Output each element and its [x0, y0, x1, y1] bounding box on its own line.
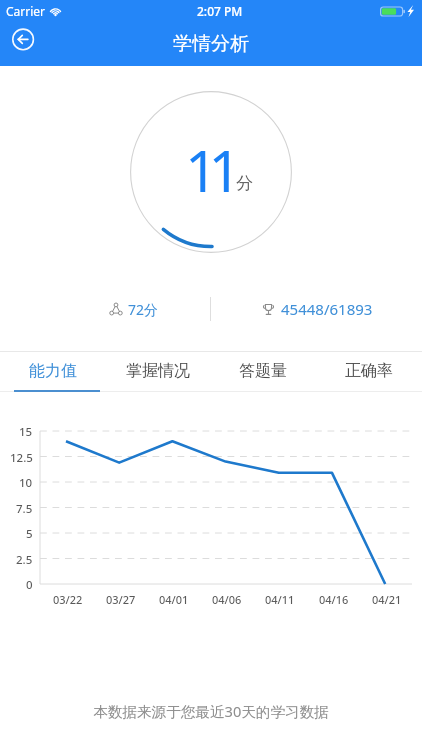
staticText: 正确率 [345, 361, 393, 381]
staticText: 04/06 [212, 592, 242, 607]
staticText: 12.5 [10, 450, 33, 466]
button[interactable]: 72分 [110, 295, 159, 323]
staticText: 5 [26, 526, 33, 542]
staticText: 学情分析 [173, 32, 249, 56]
button[interactable]: 答题量 [210, 352, 316, 392]
staticText: 10 [19, 475, 33, 491]
button[interactable]: 能力值 [0, 352, 105, 392]
staticText: 11 [185, 131, 233, 209]
staticText: 04/01 [159, 592, 189, 607]
staticText: 能力值 [29, 361, 77, 381]
staticText: 2:07 PM [197, 3, 243, 19]
staticText: 分 [236, 173, 253, 194]
button[interactable]: 45448/61893 [262, 295, 373, 323]
staticText: 15 [19, 424, 33, 440]
staticText: 04/11 [265, 592, 295, 607]
button[interactable]: 正确率 [316, 352, 422, 392]
staticText: 03/22 [53, 592, 83, 607]
staticText: 7.5 [16, 501, 33, 517]
staticText: 答题量 [239, 361, 287, 381]
staticText: 掌握情况 [126, 361, 190, 381]
staticText: 03/27 [106, 592, 136, 607]
staticText: 72分 [128, 300, 159, 319]
staticText: 本数据来源于您最近30天的学习数据 [0, 701, 422, 721]
staticText: 2.5 [16, 552, 33, 568]
button[interactable]: 掌握情况 [105, 352, 210, 392]
staticText: 45448/61893 [281, 299, 373, 319]
staticText: 04/16 [319, 592, 349, 607]
staticText: Carrier [6, 3, 46, 19]
staticText: 0 [26, 577, 33, 593]
staticText: 04/21 [372, 592, 402, 607]
button[interactable]: Back [9, 25, 37, 53]
